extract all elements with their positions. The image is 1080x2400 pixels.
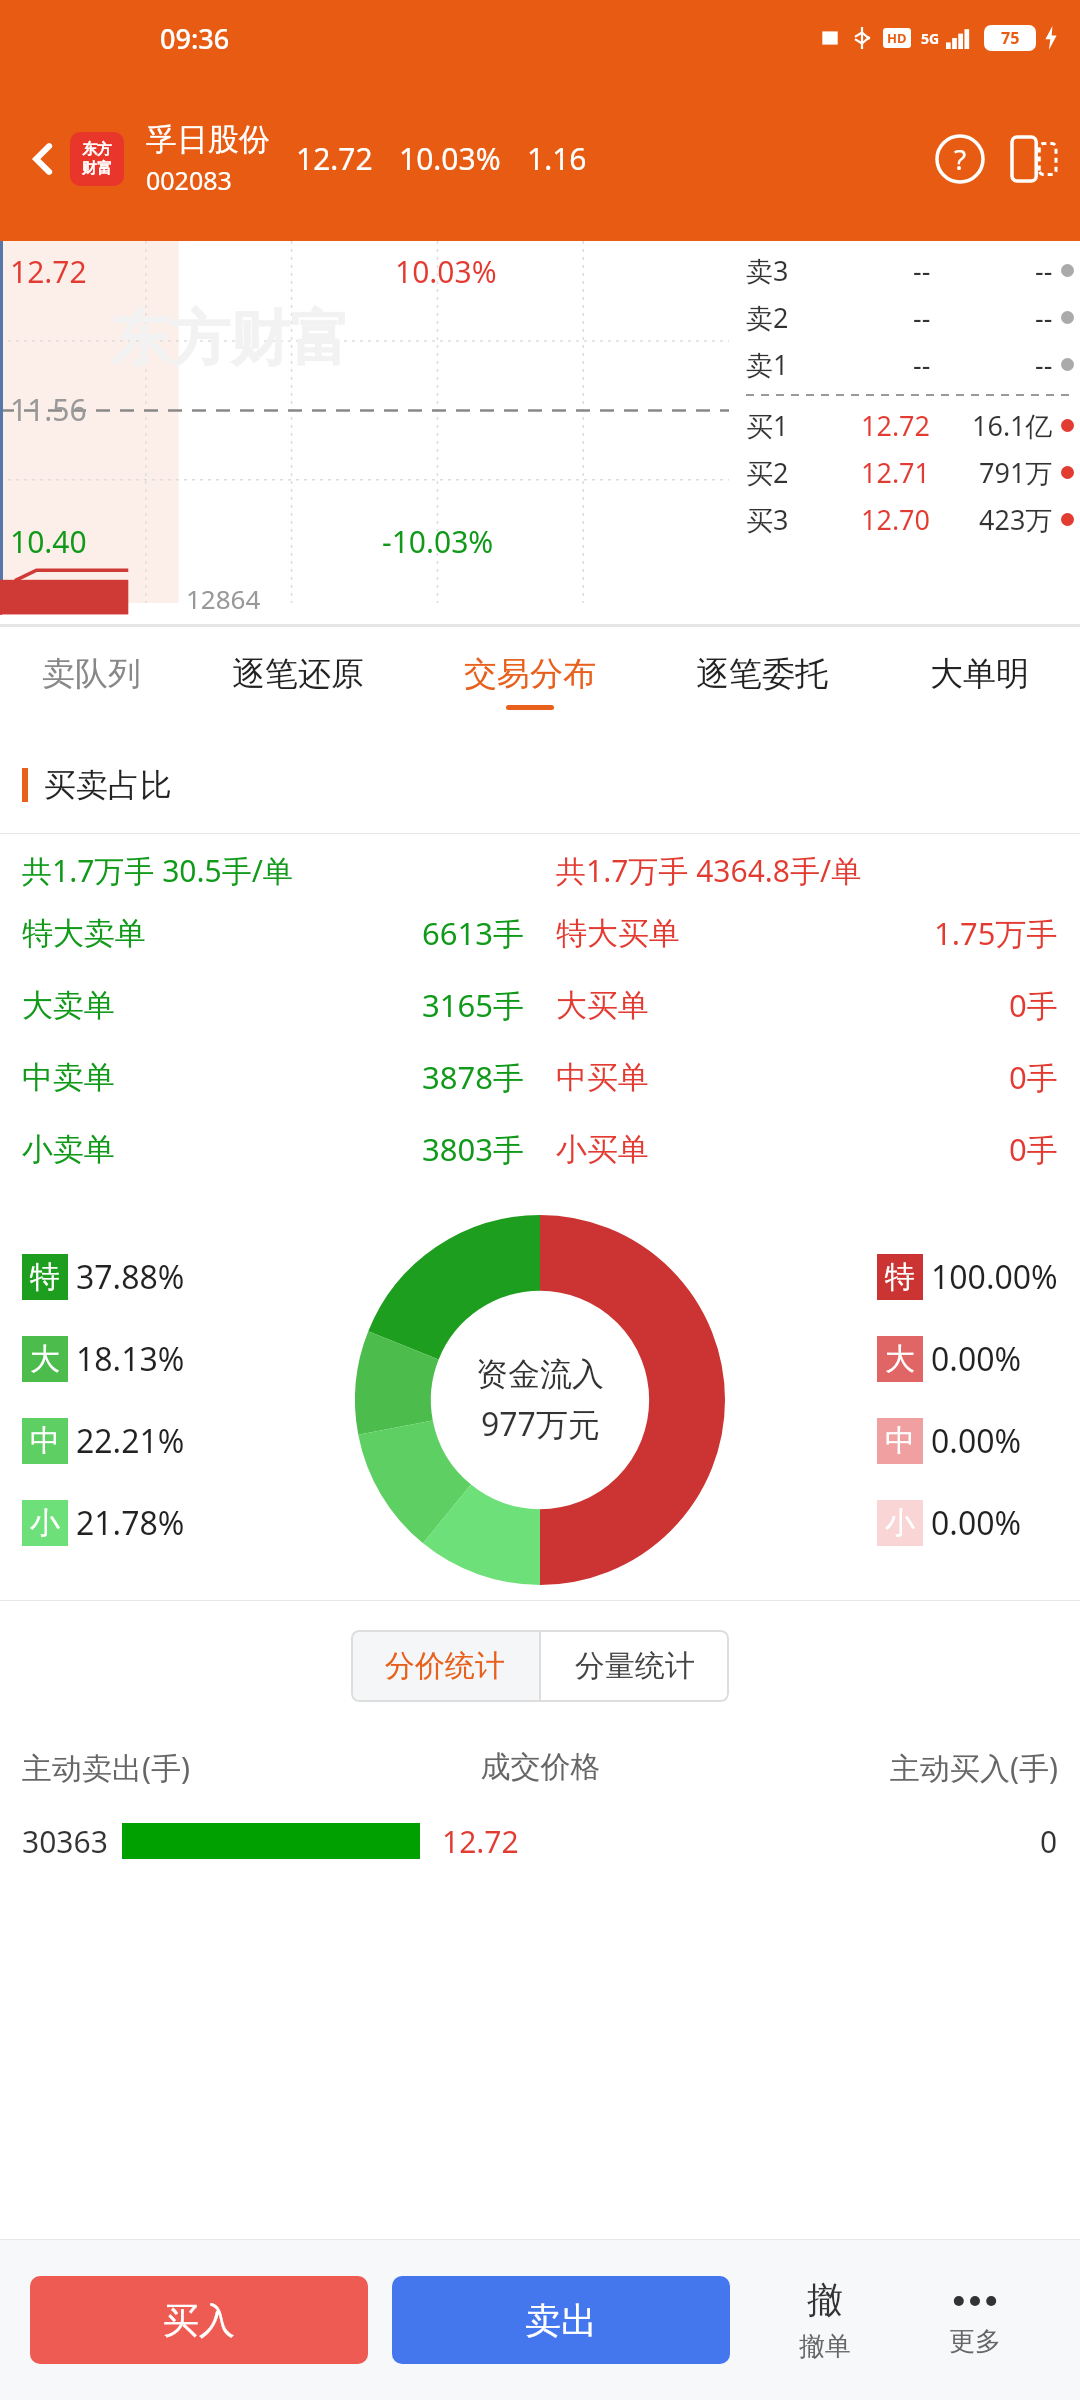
staticText: 卖2	[746, 299, 789, 336]
staticText: 0	[1040, 1821, 1058, 1862]
staticText: 大卖单	[22, 986, 115, 1025]
staticText: --	[1035, 346, 1053, 383]
staticText: 小卖单	[22, 1130, 115, 1169]
button[interactable]: 30363	[22, 1803, 1058, 1879]
staticText: 18.13%	[76, 1337, 185, 1381]
staticText: 卖3	[746, 252, 789, 289]
staticText: 75	[1001, 27, 1020, 49]
staticText: 东方	[82, 140, 112, 159]
button[interactable]: 小卖单	[0, 1128, 1080, 1200]
button[interactable]: 特	[877, 1254, 1058, 1300]
staticText: 孚日股份	[146, 120, 270, 159]
staticText: 更多	[949, 2325, 1001, 2358]
button[interactable]: 小	[877, 1500, 1022, 1546]
button[interactable]: 买2	[740, 449, 1080, 496]
staticText: 买3	[746, 501, 789, 538]
button[interactable]: 中	[22, 1418, 185, 1464]
staticText: 21.78%	[76, 1501, 185, 1545]
button[interactable]: 逐笔委托	[646, 626, 878, 736]
staticText: 小	[30, 1504, 60, 1542]
staticText: 主动买入(手)	[713, 1747, 1058, 1788]
staticText: 12.72	[442, 1821, 519, 1862]
staticText: 791万	[979, 454, 1053, 491]
button[interactable]: 中卖单	[0, 1056, 1080, 1128]
staticText: 卖出	[525, 2298, 597, 2343]
staticText: 0手	[1009, 1056, 1058, 1098]
staticText: 12.72	[10, 251, 87, 292]
staticText: 交易分布	[464, 653, 596, 695]
button[interactable]: 大	[877, 1336, 1022, 1382]
staticText: 16.1亿	[972, 407, 1053, 444]
button[interactable]: 买3	[740, 496, 1080, 543]
staticText: 3803手	[422, 1128, 524, 1170]
staticText: 423万	[979, 501, 1053, 538]
button[interactable]: 交易分布	[414, 626, 646, 736]
staticText: 12.72	[296, 138, 373, 179]
staticText: 大买单	[556, 986, 649, 1025]
staticText: 特大买单	[556, 914, 680, 953]
staticText: 逐笔委托	[696, 653, 828, 695]
staticText: 11.56	[10, 389, 87, 430]
button[interactable]: 大卖单	[0, 984, 1080, 1056]
staticText: 0.00%	[931, 1419, 1022, 1463]
staticText: 100.00%	[931, 1255, 1058, 1299]
button[interactable]: 卖2	[740, 294, 1080, 341]
staticText: 撤	[807, 2277, 843, 2322]
staticText: 小买单	[556, 1130, 649, 1169]
button[interactable]: 大	[22, 1336, 185, 1382]
staticText: 09:36	[160, 20, 230, 57]
staticText: 共1.7万手 4364.8手/单	[556, 850, 862, 891]
staticText: 10.40	[10, 521, 87, 562]
button[interactable]: 分量统计	[541, 1630, 729, 1702]
button[interactable]: 撤	[750, 2240, 900, 2400]
staticText: 0.00%	[931, 1337, 1022, 1381]
staticText: 主动卖出(手)	[22, 1747, 368, 1788]
staticText: --	[913, 299, 931, 336]
button[interactable]: 买入	[30, 2276, 368, 2364]
button[interactable]: 特大卖单	[0, 912, 1080, 984]
staticText: 977万元	[481, 1402, 600, 1446]
staticText: 买1	[746, 407, 789, 444]
button[interactable]: 买1	[740, 402, 1080, 449]
staticText: --	[1035, 299, 1053, 336]
staticText: 3165手	[422, 984, 524, 1026]
staticText: 买2	[746, 454, 789, 491]
staticText: --	[1035, 252, 1053, 289]
button[interactable]: 大单明	[878, 626, 1080, 736]
staticText: 3878手	[422, 1056, 524, 1098]
button[interactable]: 逐笔还原	[182, 626, 414, 736]
staticText: 财富	[82, 159, 112, 178]
button[interactable]: 分价统计	[351, 1630, 539, 1702]
staticText: 12.72	[861, 407, 931, 444]
staticText: 中	[885, 1422, 915, 1460]
staticText: 中买单	[556, 1058, 649, 1097]
staticText: 小	[885, 1504, 915, 1542]
button[interactable]: Back	[16, 132, 70, 186]
button[interactable]: 卖出	[392, 2276, 730, 2364]
button[interactable]: More	[900, 2240, 1050, 2400]
button[interactable]: Compare	[1004, 129, 1064, 189]
staticText: 37.88%	[76, 1255, 185, 1299]
staticText: 分价统计	[385, 1647, 505, 1685]
staticText: 22.21%	[76, 1419, 185, 1463]
staticText: 共1.7万手 30.5手/单	[22, 850, 293, 891]
button[interactable]: 卖队列	[0, 626, 182, 736]
button[interactable]: 中	[877, 1418, 1022, 1464]
button[interactable]: Help	[930, 129, 990, 189]
button[interactable]: 卖1	[740, 341, 1080, 388]
button[interactable]: 卖3	[740, 247, 1080, 294]
button[interactable]: 小	[22, 1500, 185, 1546]
staticText: 6613手	[422, 912, 524, 954]
staticText: 分量统计	[575, 1647, 695, 1685]
staticText: 12.70	[861, 501, 931, 538]
staticText: 1.16	[527, 138, 587, 179]
button[interactable]: 特	[22, 1254, 185, 1300]
staticText: 特	[885, 1258, 915, 1296]
staticText: 0手	[1009, 1128, 1058, 1170]
staticText: 5G	[921, 29, 940, 48]
staticText: 1.75万手	[934, 912, 1058, 954]
staticText: 12864	[186, 581, 261, 616]
staticText: 12.71	[861, 454, 931, 491]
staticText: --	[913, 346, 931, 383]
staticText: 成交价格	[368, 1748, 713, 1786]
